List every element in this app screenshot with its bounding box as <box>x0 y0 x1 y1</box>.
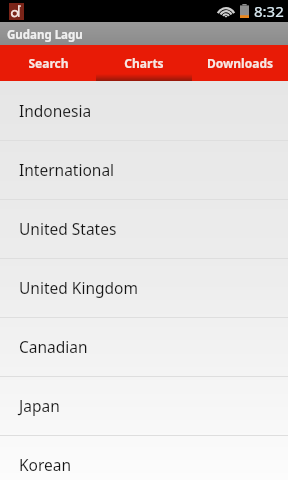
button[interactable]: Indonesia <box>0 81 288 140</box>
staticText: Downloads <box>207 55 273 71</box>
staticText: Gudang Lagu <box>7 27 83 43</box>
staticText: International <box>19 159 115 180</box>
other: Wi-Fi signal <box>216 4 236 18</box>
button[interactable]: Canadian <box>0 317 288 376</box>
button[interactable]: United States <box>0 199 288 258</box>
staticText: Indonesia <box>19 100 92 121</box>
other: Gudang Lagu notification <box>9 3 24 20</box>
button[interactable]: Japan <box>0 376 288 435</box>
button[interactable]: United Kingdom <box>0 258 288 317</box>
button[interactable]: Search <box>0 45 96 81</box>
button[interactable]: Downloads <box>192 45 288 81</box>
button[interactable]: International <box>0 140 288 199</box>
staticText: Korean <box>19 454 72 475</box>
button[interactable]: Charts <box>96 45 192 81</box>
other: Battery low <box>240 4 249 18</box>
staticText: Search <box>28 55 69 71</box>
staticText: United Kingdom <box>19 277 138 298</box>
staticText: Charts <box>124 55 164 71</box>
staticText: Canadian <box>19 336 88 357</box>
staticText: Japan <box>19 395 60 416</box>
staticText: United States <box>19 218 117 239</box>
button[interactable]: Korean <box>0 435 288 480</box>
staticText: 8:32 <box>254 1 284 21</box>
